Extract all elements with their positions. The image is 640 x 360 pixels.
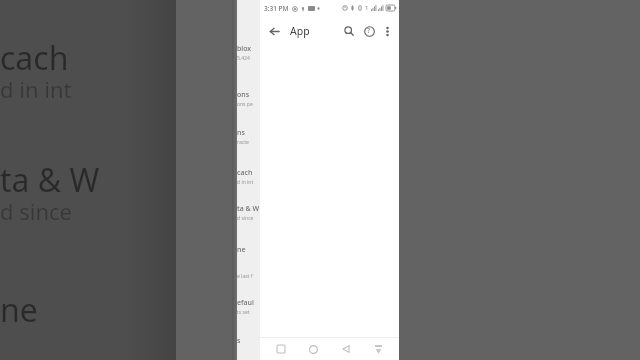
- button[interactable]: Search: [340, 22, 358, 40]
- staticText: ta & W: [237, 204, 260, 214]
- staticText: ons: [237, 90, 250, 100]
- staticText: 3:31 PM: [264, 4, 289, 13]
- staticText: ta & W: [0, 158, 100, 202]
- staticText: 5.424: [237, 55, 250, 62]
- staticText: d in int: [237, 179, 254, 186]
- staticText: d in int: [0, 74, 72, 104]
- staticText: efaul: [237, 298, 254, 308]
- staticText: d since: [237, 215, 254, 222]
- button[interactable]: Navigate up: [264, 21, 284, 41]
- staticText: 1: [365, 4, 369, 12]
- staticText: ne: [237, 245, 246, 255]
- staticText: App permissi…: [290, 24, 340, 38]
- button[interactable]: Hide keyboard: [367, 338, 389, 360]
- staticText: ons pe: [237, 101, 253, 108]
- staticText: cach: [0, 36, 69, 80]
- staticText: ?: [367, 26, 371, 36]
- staticText: blox: [237, 44, 252, 54]
- staticText: s: [237, 336, 241, 346]
- staticText: e last f: [237, 273, 253, 280]
- staticText: ns: [237, 128, 245, 138]
- button[interactable]: Home: [302, 338, 324, 360]
- staticText: d since: [0, 196, 73, 226]
- button[interactable]: Recent apps: [270, 338, 292, 360]
- button[interactable]: More options: [379, 23, 395, 39]
- staticText: ne: [0, 288, 38, 332]
- staticText: racte: [237, 139, 249, 146]
- staticText: cach: [237, 168, 253, 178]
- button[interactable]: Help and feedback: [360, 22, 378, 40]
- button[interactable]: Back: [335, 338, 357, 360]
- staticText: ts set: [237, 309, 250, 316]
